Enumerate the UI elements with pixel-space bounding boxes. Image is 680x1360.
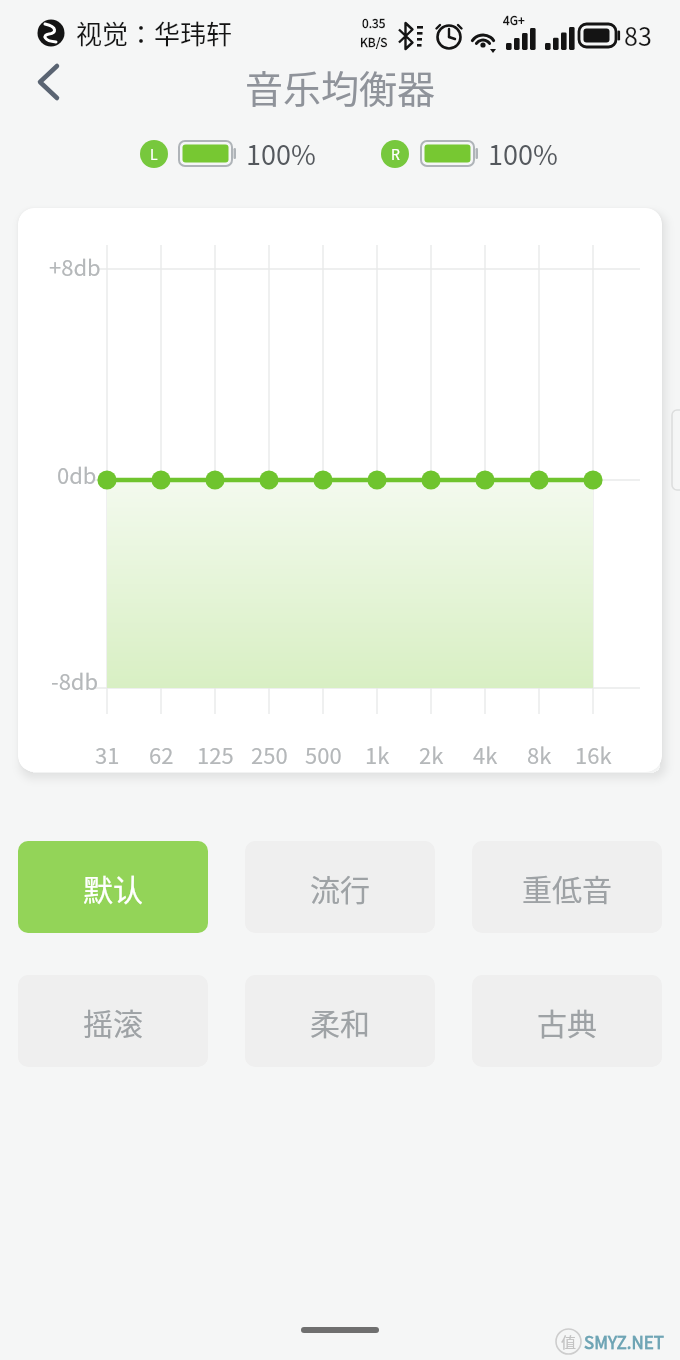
staticText: 音乐均衡器 [245,59,436,114]
staticText: 125 [197,738,234,770]
staticText: L [150,144,158,164]
staticText: 8k [527,738,552,770]
staticText: -8db [51,664,99,696]
button[interactable]: 柔和 [245,975,435,1067]
button[interactable]: 古典 [472,975,662,1067]
staticText: +8db [49,250,101,282]
button[interactable] [28,58,76,106]
button[interactable]: 默认 [18,841,208,933]
staticText: 250 [251,738,288,770]
button[interactable]: 流行 [245,841,435,933]
staticText: 2k [419,738,444,770]
staticText: 83 [624,17,652,53]
staticText: KB/S [360,33,388,49]
staticText: 0.35 [362,14,386,30]
staticText: R [391,144,400,164]
button[interactable]: 摇滚 [18,975,208,1067]
staticText: 500 [305,738,342,770]
staticText: 柔和 [310,1000,370,1043]
staticText: 视觉：华玮轩 [76,14,233,52]
staticText: 100% [488,134,558,173]
staticText: SMYZ.NET [584,1329,664,1354]
staticText: 31 [95,738,120,770]
staticText: 默认 [83,866,143,909]
staticText: 值 [561,1331,577,1353]
staticText: 0db [57,458,97,490]
staticText: 流行 [310,866,370,909]
button[interactable]: 重低音 [472,841,662,933]
staticText: 4G+ [503,11,525,27]
staticText: 16k [575,738,612,770]
staticText: 摇滚 [83,1000,143,1043]
staticText: 100% [246,134,316,173]
staticText: 1k [365,738,390,770]
staticText: 4k [473,738,498,770]
staticText: 重低音 [522,866,612,909]
staticText: 古典 [537,1000,597,1043]
staticText: 62 [149,738,174,770]
